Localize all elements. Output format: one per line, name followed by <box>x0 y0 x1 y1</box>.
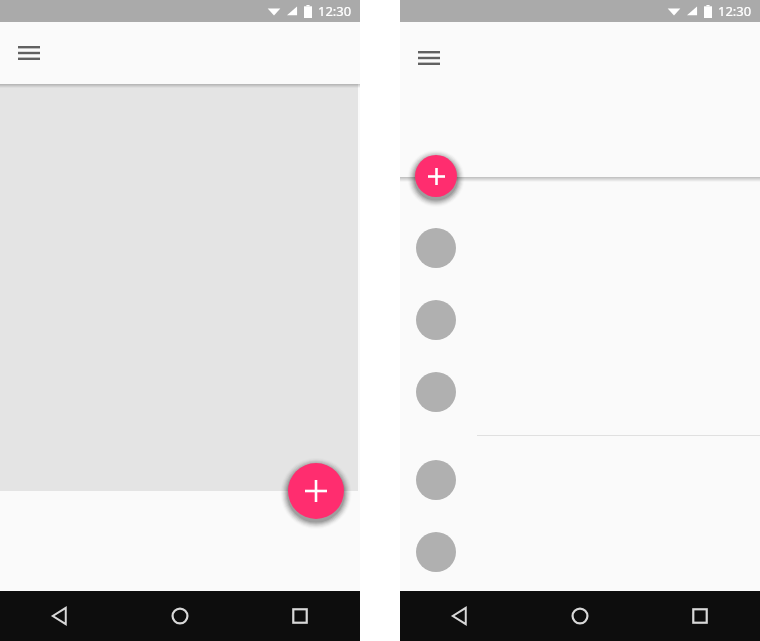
button[interactable]: Recent apps <box>640 591 760 641</box>
button[interactable] <box>416 532 456 572</box>
button[interactable]: Back <box>0 591 120 641</box>
button[interactable]: Open navigation menu <box>1 25 57 81</box>
button[interactable] <box>416 460 456 500</box>
staticText: 12:30 <box>718 2 752 20</box>
button[interactable]: Back <box>400 591 520 641</box>
button[interactable]: Recent apps <box>240 591 360 641</box>
button[interactable]: Open navigation menu <box>401 30 457 86</box>
button[interactable]: Home <box>520 591 640 641</box>
button[interactable]: Add <box>288 463 344 519</box>
button[interactable]: Add <box>415 155 457 197</box>
button[interactable] <box>416 300 456 340</box>
button[interactable] <box>416 228 456 268</box>
button[interactable] <box>416 372 456 412</box>
button[interactable]: Home <box>120 591 240 641</box>
staticText: 12:30 <box>318 2 352 20</box>
